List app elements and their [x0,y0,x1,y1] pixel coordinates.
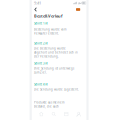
staticText: Bestellung wurde vom [34,28,66,31]
staticText: Verkäufer erstellt. [34,32,59,35]
staticText: Produkte aus meinem [34,101,64,104]
button[interactable]: Orders [60,110,72,118]
button[interactable]: Options [74,6,82,12]
staticText: Schritt 4/4 [34,83,48,86]
button[interactable]: Search [47,110,60,118]
staticText: Ihre Sendung ist unterwegs [34,67,74,70]
staticText: 9:41 [34,0,41,6]
button[interactable]: Back [33,6,39,13]
staticText: Die Sendung wurde zugestellt. [34,88,79,91]
staticText: Die Bestellung wurde [34,47,66,50]
staticText: Schritt 1/4 [34,22,48,25]
staticText: Bestell-Verlauf [34,13,63,19]
button[interactable]: Home [35,110,47,118]
staticText: Bestand, die auch [34,105,59,108]
staticText: Schritt 3/4 [34,62,48,65]
staticText: zum Ziel. [34,71,47,74]
staticText: abgeholt und befindet sich in [34,51,78,54]
button[interactable]: Profile [72,110,85,118]
staticText: Schritt 2/4 [34,42,48,45]
staticText: der Versendung. [34,55,59,58]
